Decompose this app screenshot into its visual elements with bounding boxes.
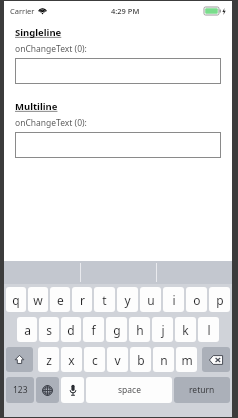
button[interactable]: e xyxy=(50,287,70,312)
staticText: f xyxy=(91,322,96,338)
staticText: s xyxy=(46,322,52,338)
staticText: h xyxy=(136,322,144,338)
button[interactable]: space xyxy=(86,377,172,403)
button[interactable]: x xyxy=(61,347,82,372)
button[interactable]: n xyxy=(153,347,174,372)
button[interactable]: o xyxy=(186,287,207,312)
button[interactable]: h xyxy=(129,317,150,342)
button[interactable]: z xyxy=(38,347,59,372)
button[interactable]: v xyxy=(107,347,128,372)
button[interactable]: b xyxy=(130,347,151,372)
button[interactable]: 123 xyxy=(6,377,34,403)
staticText: return xyxy=(189,384,215,396)
button[interactable]: k xyxy=(175,317,196,342)
staticText: z xyxy=(46,352,52,368)
staticText: p xyxy=(216,292,224,308)
staticText: o xyxy=(193,292,201,308)
button[interactable]: l xyxy=(198,317,219,342)
staticText: 123 xyxy=(13,384,28,396)
staticText: onChangeText (0): xyxy=(15,117,87,129)
button[interactable]: Change keyboard xyxy=(36,377,59,403)
button[interactable]: w xyxy=(28,287,48,312)
staticText: w xyxy=(33,292,43,308)
button[interactable]: a xyxy=(17,317,37,342)
staticText: m xyxy=(181,352,193,368)
staticText: c xyxy=(92,352,98,368)
staticText: u xyxy=(147,292,155,308)
button[interactable]: m xyxy=(176,347,197,372)
button[interactable]: Shift xyxy=(6,347,33,372)
button[interactable]: g xyxy=(106,317,127,342)
staticText: a xyxy=(24,322,31,338)
button[interactable]: t xyxy=(94,287,115,312)
button[interactable] xyxy=(15,132,221,158)
staticText: Singleline xyxy=(15,26,62,39)
staticText: x xyxy=(68,352,75,368)
button[interactable]: return xyxy=(174,377,230,403)
staticText: y xyxy=(124,292,131,308)
staticText: j xyxy=(161,322,165,338)
button[interactable] xyxy=(15,58,221,84)
staticText: q xyxy=(12,292,20,308)
staticText: i xyxy=(172,292,176,308)
button[interactable]: y xyxy=(117,287,138,312)
staticText: n xyxy=(160,352,168,368)
button[interactable]: s xyxy=(39,317,59,342)
staticText: Carrier xyxy=(10,6,35,16)
button[interactable]: j xyxy=(152,317,173,342)
staticText: 4:29 PM xyxy=(111,6,140,16)
staticText: d xyxy=(67,322,75,338)
staticText: t xyxy=(102,292,107,308)
button[interactable]: d xyxy=(61,317,81,342)
staticText: e xyxy=(57,292,64,308)
button[interactable]: Dictate xyxy=(61,377,84,403)
button[interactable]: f xyxy=(83,317,104,342)
staticText: v xyxy=(114,352,121,368)
staticText: Multiline xyxy=(15,100,58,113)
button[interactable]: q xyxy=(6,287,26,312)
staticText: onChangeText (0): xyxy=(15,43,87,55)
button[interactable]: r xyxy=(72,287,92,312)
button[interactable]: i xyxy=(163,287,184,312)
button[interactable]: u xyxy=(140,287,161,312)
staticText: l xyxy=(207,322,211,338)
staticText: g xyxy=(113,322,121,338)
staticText: b xyxy=(137,352,145,368)
button[interactable]: p xyxy=(209,287,230,312)
button[interactable]: Backspace xyxy=(202,347,230,372)
staticText: k xyxy=(182,322,189,338)
button[interactable]: c xyxy=(84,347,105,372)
staticText: space xyxy=(118,384,141,396)
staticText: r xyxy=(80,292,85,308)
